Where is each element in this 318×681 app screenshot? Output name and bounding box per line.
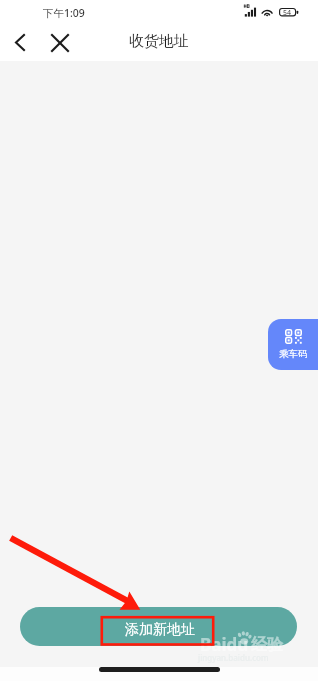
- staticText: 54: [283, 8, 292, 17]
- staticText: jingyan.baidu.com: [198, 652, 269, 663]
- staticText: 乘车码: [279, 348, 308, 360]
- staticText: 收货地址: [129, 32, 189, 51]
- staticText: 经验: [251, 635, 283, 655]
- button[interactable]: 乘车码: [268, 319, 318, 370]
- staticText: 添加新地址: [125, 621, 195, 639]
- staticText: Baidu: [200, 633, 249, 656]
- staticText: 下午1:09: [43, 6, 85, 20]
- button[interactable]: 关闭: [44, 27, 75, 58]
- button[interactable]: 添加新地址: [20, 607, 297, 646]
- button[interactable]: 返回: [4, 27, 35, 58]
